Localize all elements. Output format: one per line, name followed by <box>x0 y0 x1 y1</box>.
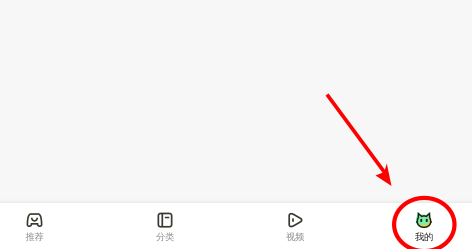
button[interactable]: 视频 <box>262 205 328 249</box>
staticText: 我的 <box>415 231 433 243</box>
button[interactable]: 我的 <box>391 205 457 249</box>
staticText: 视频 <box>286 231 304 243</box>
button[interactable]: 分类 <box>132 205 198 249</box>
button[interactable]: 推荐 <box>1 205 67 249</box>
staticText: 分类 <box>156 231 174 243</box>
staticText: 推荐 <box>25 231 43 243</box>
